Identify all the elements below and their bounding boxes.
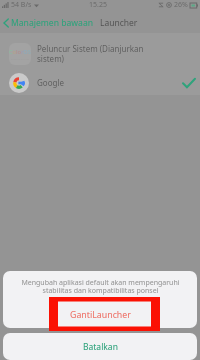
staticText: Google [37, 77, 64, 88]
staticText: Mengubah aplikasi default akan mempengar… [21, 278, 180, 295]
button[interactable]: ColorOS [0, 33, 200, 70]
button[interactable]: Google [0, 70, 200, 95]
staticText: Batalkan [83, 341, 118, 353]
staticText: 54 B/s [11, 0, 32, 10]
staticText: GantiLauncher [70, 309, 131, 321]
staticText: 15.25 [89, 0, 107, 10]
staticText: Launcher [100, 17, 138, 29]
button[interactable]: GantiLauncher [3, 304, 197, 326]
staticText: Manajemen bawaan [11, 17, 94, 29]
staticText: Peluncur Sistem (Dianjurkan sistem) [37, 43, 152, 65]
button[interactable]: Manajemen bawaan [0, 17, 96, 29]
button[interactable]: Batalkan [3, 333, 197, 360]
staticText: ColorOS [9, 48, 31, 56]
staticText: 26% [174, 0, 188, 10]
